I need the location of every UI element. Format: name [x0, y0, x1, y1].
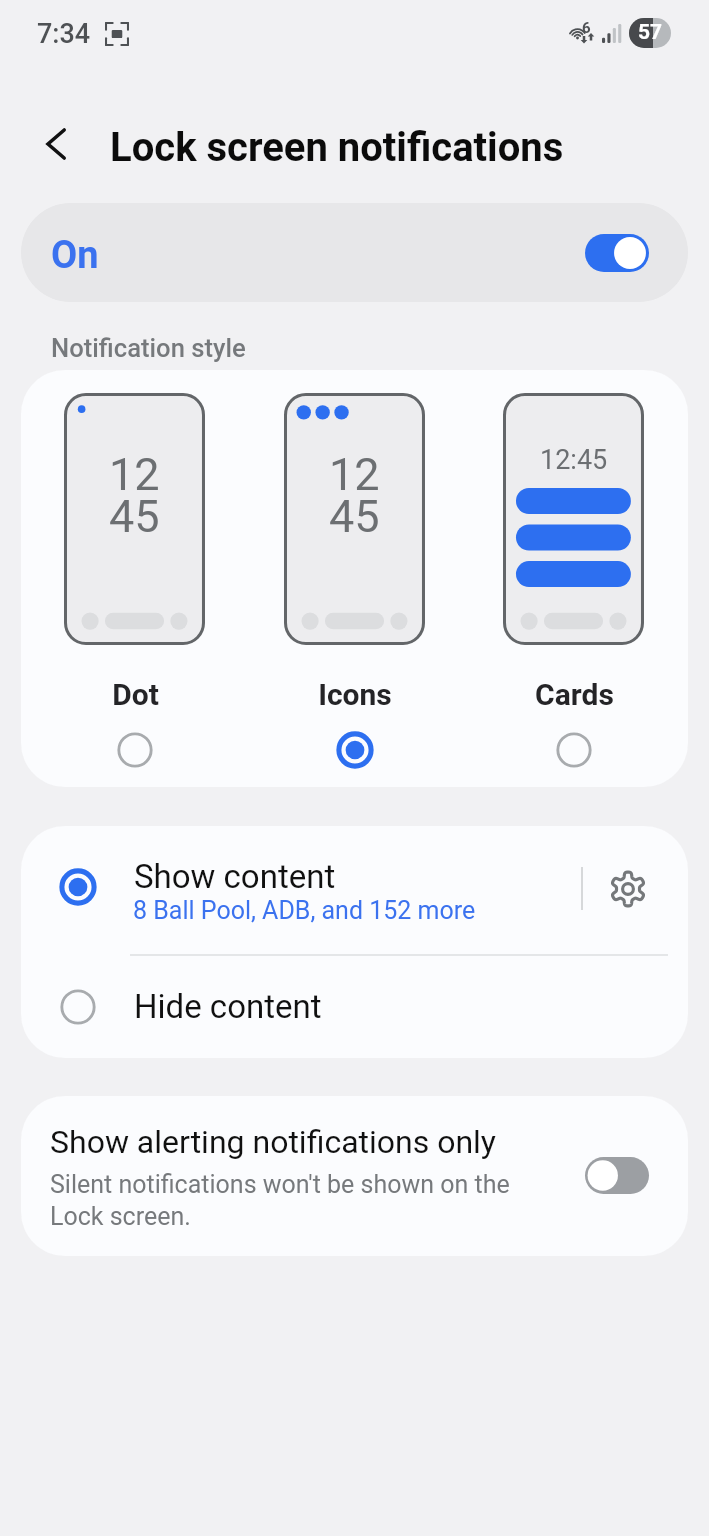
button[interactable]: 12: [44, 370, 226, 787]
staticText: 12: [109, 448, 160, 501]
staticText: On: [51, 233, 99, 278]
staticText: 57: [638, 20, 663, 45]
button[interactable]: Back: [29, 116, 85, 172]
staticText: 8 Ball Pool, ADB, and 152 more: [133, 896, 476, 925]
staticText: 7:34: [37, 18, 91, 50]
button[interactable]: 12: [264, 370, 446, 787]
staticText: Notification style: [51, 333, 246, 363]
staticText: Hide content: [134, 987, 322, 1026]
button[interactable]: Hide content: [21, 957, 688, 1058]
staticText: Show alerting notifications only: [50, 1123, 496, 1161]
staticText: 12:45: [540, 444, 608, 476]
staticText: Dot: [112, 677, 159, 712]
staticText: Icons: [318, 677, 392, 712]
staticText: Show content: [134, 857, 336, 896]
staticText: 45: [329, 490, 380, 543]
staticText: Lock screen notifications: [110, 124, 564, 171]
button[interactable]: Settings: [588, 849, 668, 929]
button[interactable]: Show content: [21, 826, 688, 956]
staticText: 6: [582, 19, 591, 37]
staticText: 45: [109, 490, 160, 543]
staticText: Cards: [535, 677, 614, 712]
button[interactable]: 12:45: [483, 370, 665, 787]
staticText: Silent notifications won't be shown on t…: [50, 1170, 510, 1231]
button[interactable]: On: [21, 203, 688, 302]
button[interactable]: Show alerting notifications only: [21, 1096, 688, 1256]
staticText: 12: [329, 448, 380, 501]
